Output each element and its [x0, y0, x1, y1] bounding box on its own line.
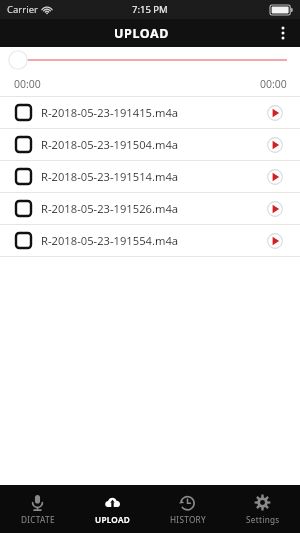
staticText: 00:00 [14, 77, 41, 91]
button[interactable]: Play R-2018-05-23-191504.m4a [263, 133, 287, 157]
staticText: R-2018-05-23-191504.m4a [41, 137, 179, 152]
button[interactable]: Select R-2018-05-23-191526.m4a [0, 193, 300, 224]
button[interactable]: DICTATE [0, 485, 75, 533]
staticText: DICTATE [21, 514, 55, 525]
staticText: UPLOAD [114, 25, 169, 42]
button[interactable]: Play R-2018-05-23-191554.m4a [263, 229, 287, 253]
staticText: R-2018-05-23-191526.m4a [41, 201, 179, 216]
button[interactable]: Play R-2018-05-23-191526.m4a [263, 197, 287, 221]
button[interactable]: Select R-2018-05-23-191415.m4a [14, 103, 33, 122]
button[interactable]: Select R-2018-05-23-191514.m4a [14, 167, 33, 186]
staticText: R-2018-05-23-191415.m4a [41, 105, 179, 120]
staticText: R-2018-05-23-191554.m4a [41, 233, 179, 248]
button[interactable]: Play R-2018-05-23-191514.m4a [263, 165, 287, 189]
staticText: UPLOAD [95, 514, 131, 525]
button[interactable]: Select R-2018-05-23-191504.m4a [14, 135, 33, 154]
button[interactable]: Select R-2018-05-23-191554.m4a [0, 225, 300, 256]
button[interactable]: Select R-2018-05-23-191526.m4a [14, 199, 33, 218]
button[interactable]: Select R-2018-05-23-191504.m4a [0, 129, 300, 160]
button[interactable]: Settings [225, 485, 300, 533]
button[interactable]: HISTORY [150, 485, 225, 533]
button[interactable]: Select R-2018-05-23-191554.m4a [14, 231, 33, 250]
button[interactable]: Select R-2018-05-23-191514.m4a [0, 161, 300, 192]
staticText: 7:15 PM [132, 3, 168, 16]
staticText: R-2018-05-23-191514.m4a [41, 169, 179, 184]
staticText: HISTORY [170, 514, 206, 525]
button[interactable]: More options [266, 19, 300, 47]
button[interactable]: UPLOAD [75, 485, 150, 533]
staticText: Carrier [7, 3, 38, 16]
staticText: 00:00 [260, 77, 287, 91]
button[interactable]: Playback position [0, 47, 300, 77]
button[interactable]: Select R-2018-05-23-191415.m4a [0, 97, 300, 128]
staticText: Settings [246, 514, 280, 525]
button[interactable]: Play R-2018-05-23-191415.m4a [263, 101, 287, 125]
